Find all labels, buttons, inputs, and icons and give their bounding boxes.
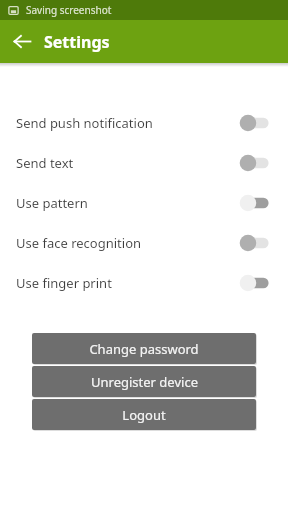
staticText: Settings	[44, 31, 110, 53]
button[interactable]: Change password	[32, 333, 256, 364]
button[interactable]: Unregister device	[32, 366, 256, 397]
staticText: Send push notification	[16, 114, 238, 132]
staticText: Use face recognition	[16, 234, 238, 252]
button[interactable]: Use finger print	[0, 263, 288, 303]
button[interactable]: Send push notification	[0, 103, 288, 143]
button[interactable]: Use face recognition	[0, 223, 288, 263]
staticText: Saving screenshot	[26, 3, 112, 17]
button[interactable]: Logout	[32, 399, 256, 430]
button[interactable]: Use pattern	[0, 183, 288, 223]
button[interactable]: Send text	[0, 143, 288, 183]
button[interactable]: Back	[0, 20, 44, 63]
staticText: Logout	[122, 406, 166, 424]
staticText: Unregister device	[91, 373, 198, 391]
staticText: Use finger print	[16, 274, 238, 292]
staticText: Use pattern	[16, 194, 238, 212]
staticText: Send text	[16, 154, 238, 172]
staticText: Change password	[89, 340, 199, 358]
